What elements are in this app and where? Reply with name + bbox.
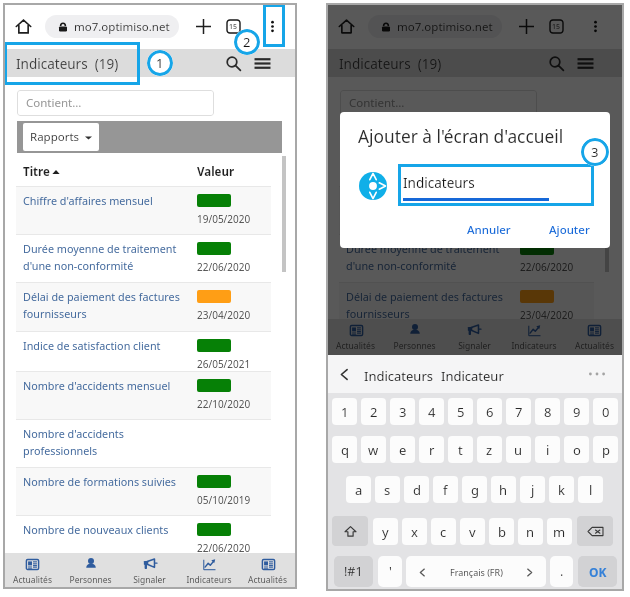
button[interactable]: q [332, 436, 357, 463]
button[interactable]: 0 [593, 398, 618, 425]
button[interactable]: Personnes [61, 553, 120, 589]
button[interactable]: b [489, 518, 514, 545]
button[interactable]: r [419, 436, 444, 463]
button[interactable]: Contient... [340, 90, 537, 116]
button[interactable]: 9 [564, 398, 589, 425]
button[interactable]: Chiffre d'affaires mensuel [339, 186, 594, 234]
button[interactable]: Nombre de formations suivies [16, 467, 271, 515]
button[interactable]: g [462, 476, 487, 503]
button[interactable]: Chiffre d'affaires mensuel [16, 186, 271, 234]
button[interactable]: Tabs, 15 open [222, 15, 244, 37]
button[interactable]: Nombre de nouveaux clients [16, 515, 271, 563]
button[interactable]: Actualités [564, 319, 624, 355]
button[interactable]: Délai de paiement des factures [16, 282, 271, 331]
button[interactable]: Ajouter [549, 222, 590, 238]
staticText: d [413, 481, 421, 499]
staticText: Contient... [349, 95, 405, 111]
button[interactable]: Contient... [17, 90, 214, 116]
button[interactable]: Home [335, 15, 357, 37]
button[interactable]: Indice de satisfaction client [16, 331, 271, 371]
button[interactable]: Actualités [326, 319, 385, 355]
button[interactable]: More [588, 370, 608, 378]
button[interactable]: Signaler [444, 319, 504, 355]
button[interactable]: Durée moyenne de traitement [339, 234, 594, 282]
button[interactable]: l [578, 476, 603, 503]
button[interactable]: Indicateurs (19) [16, 55, 119, 73]
button[interactable]: Tabs, 15 open [545, 15, 567, 37]
button[interactable] [577, 516, 613, 546]
button[interactable]: mo7.optimiso.net [368, 15, 502, 38]
button[interactable]: 2 [361, 398, 386, 425]
button[interactable]: o [564, 436, 589, 463]
button[interactable]: Search [222, 52, 244, 74]
button[interactable]: Rapports [346, 123, 422, 151]
button[interactable]: Nombre d'accidents mensuel [339, 371, 594, 419]
button[interactable]: More options [261, 15, 283, 37]
button[interactable]: Indicateurs [364, 367, 433, 385]
button[interactable]: Nombre d'accidents [339, 419, 594, 464]
button[interactable]: More options [584, 15, 606, 37]
button[interactable]: New tab [515, 15, 537, 37]
button[interactable]: 8 [535, 398, 560, 425]
button[interactable]: s [375, 476, 400, 503]
button[interactable]: Rapports [23, 123, 99, 151]
button[interactable]: Nombre d'accidents mensuel [16, 371, 271, 419]
button[interactable]: e [390, 436, 415, 463]
button[interactable]: 5 [448, 398, 473, 425]
button[interactable]: Home [12, 15, 34, 37]
button[interactable]: Titre [23, 164, 60, 180]
button[interactable]: Actualités [238, 553, 297, 589]
button[interactable]: w [361, 436, 386, 463]
button[interactable]: ' [378, 556, 402, 587]
button[interactable]: mo7.optimiso.net [45, 15, 179, 38]
button[interactable]: x [402, 518, 427, 545]
button[interactable]: f [433, 476, 458, 503]
button[interactable]: Menu [251, 52, 273, 74]
button[interactable]: Titre [346, 164, 383, 180]
button[interactable]: i [535, 436, 560, 463]
button[interactable]: Nombre d'accidents [16, 419, 271, 467]
button[interactable]: Personnes [385, 319, 444, 355]
button[interactable]: Indice de satisfaction client [339, 331, 594, 371]
button[interactable]: t [448, 436, 473, 463]
button[interactable]: z [477, 436, 502, 463]
button[interactable]: k [549, 476, 574, 503]
button[interactable]: v [460, 518, 485, 545]
button[interactable]: OK [578, 556, 617, 587]
button[interactable]: New tab [192, 15, 214, 37]
button[interactable]: Menu [574, 52, 596, 74]
button[interactable]: 6 [477, 398, 502, 425]
button[interactable]: Indicateurs [179, 553, 238, 589]
button[interactable]: Durée moyenne de traitement [16, 234, 271, 282]
button[interactable]: m [547, 518, 572, 545]
button[interactable] [332, 516, 368, 546]
button[interactable]: Actualités [3, 553, 61, 589]
staticText: o [573, 441, 581, 459]
button[interactable]: j [520, 476, 545, 503]
button[interactable]: Indicateur [441, 367, 504, 385]
button[interactable]: n [518, 518, 543, 545]
button[interactable]: 1 [332, 398, 357, 425]
button[interactable]: Signaler [120, 553, 179, 589]
button[interactable]: Indicateurs [504, 319, 564, 355]
button[interactable]: 3 [390, 398, 415, 425]
button[interactable]: Indicateurs (19) [339, 55, 442, 73]
staticText: Indicateurs [403, 174, 475, 192]
button[interactable]: h [491, 476, 516, 503]
button[interactable]: d [404, 476, 429, 503]
button[interactable]: 7 [506, 398, 531, 425]
button[interactable]: !#1 [334, 556, 373, 587]
button[interactable]: Délai de paiement des factures [339, 282, 594, 331]
button[interactable]: p [593, 436, 618, 463]
button[interactable]: Français (FR) [406, 556, 546, 587]
button[interactable]: 4 [419, 398, 444, 425]
button[interactable]: a [346, 476, 371, 503]
staticText: h [499, 481, 508, 499]
button[interactable]: c [431, 518, 456, 545]
button[interactable]: Back [336, 366, 352, 382]
button[interactable]: Search [545, 52, 567, 74]
button[interactable]: u [506, 436, 531, 463]
button[interactable]: Annuler [467, 222, 511, 238]
button[interactable]: y [373, 518, 398, 545]
button[interactable]: . [550, 556, 573, 587]
